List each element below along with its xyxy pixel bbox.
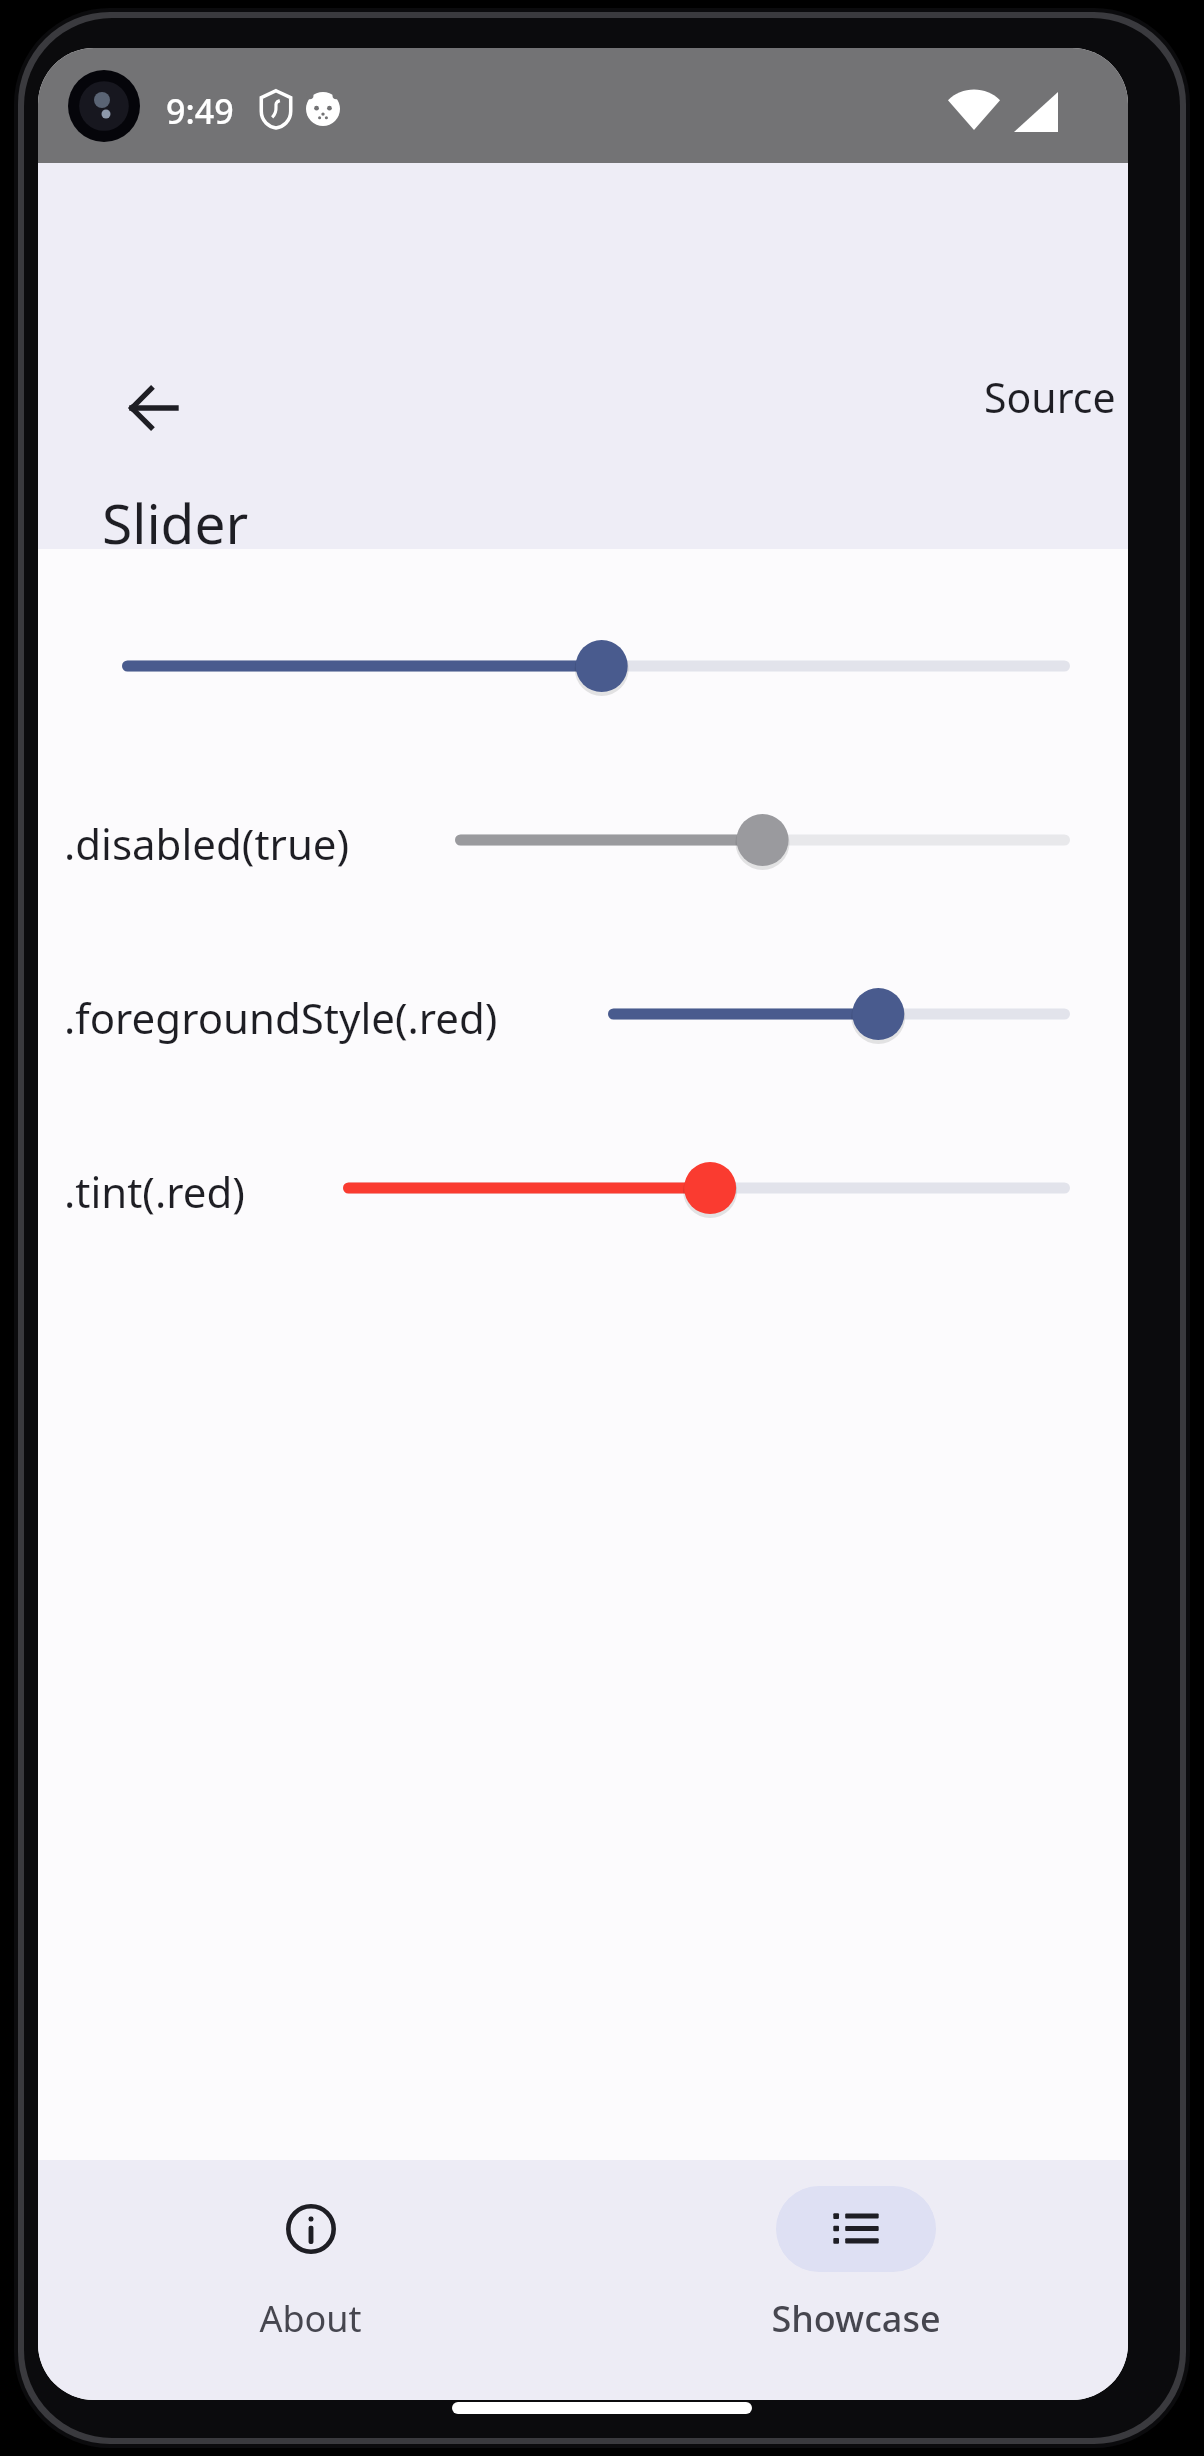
button[interactable]: Showcase [583, 2160, 1128, 2343]
staticText: Source [984, 369, 1116, 425]
staticText: .tint(.red) [64, 1163, 245, 1220]
button[interactable]: .disabled(true) [455, 801, 1070, 879]
staticText: Showcase [771, 2294, 941, 2343]
button[interactable]: Back [100, 355, 206, 461]
staticText: .foregroundStyle(.red) [64, 989, 498, 1046]
button[interactable]: About [38, 2160, 583, 2343]
staticText: About [259, 2294, 362, 2343]
button[interactable]: Source [968, 359, 1128, 435]
button[interactable]: .tint(.red) [343, 1149, 1070, 1227]
button[interactable]: .foregroundStyle(.red) [608, 975, 1070, 1053]
staticText: .disabled(true) [64, 815, 350, 872]
staticText: 9:49 [166, 88, 234, 134]
staticText: Slider [102, 485, 249, 560]
button[interactable]: Slider [122, 627, 1070, 705]
